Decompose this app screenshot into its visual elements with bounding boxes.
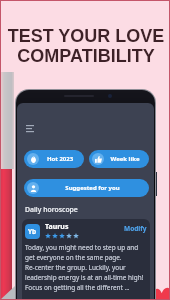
staticText: Week like [104,155,146,163]
button[interactable]: Yb [22,219,150,300]
staticText: TEST YOUR LOVE COMPATIBILITY [1,26,170,66]
staticText: Daily horoscope [25,205,78,214]
staticText: Today, you might need to step up and get… [25,243,149,292]
staticText: Suggested for you [39,184,146,192]
button[interactable]: Modify [124,224,147,233]
staticText: Yb [28,227,37,236]
staticText: Taurus [45,222,69,232]
staticText: Hot 2023 [39,155,81,163]
button[interactable]: Suggested for you [24,179,149,197]
button[interactable]: Hot 2023 [24,150,84,168]
button[interactable]: Menu [24,122,36,132]
button[interactable]: Week like [89,150,149,168]
